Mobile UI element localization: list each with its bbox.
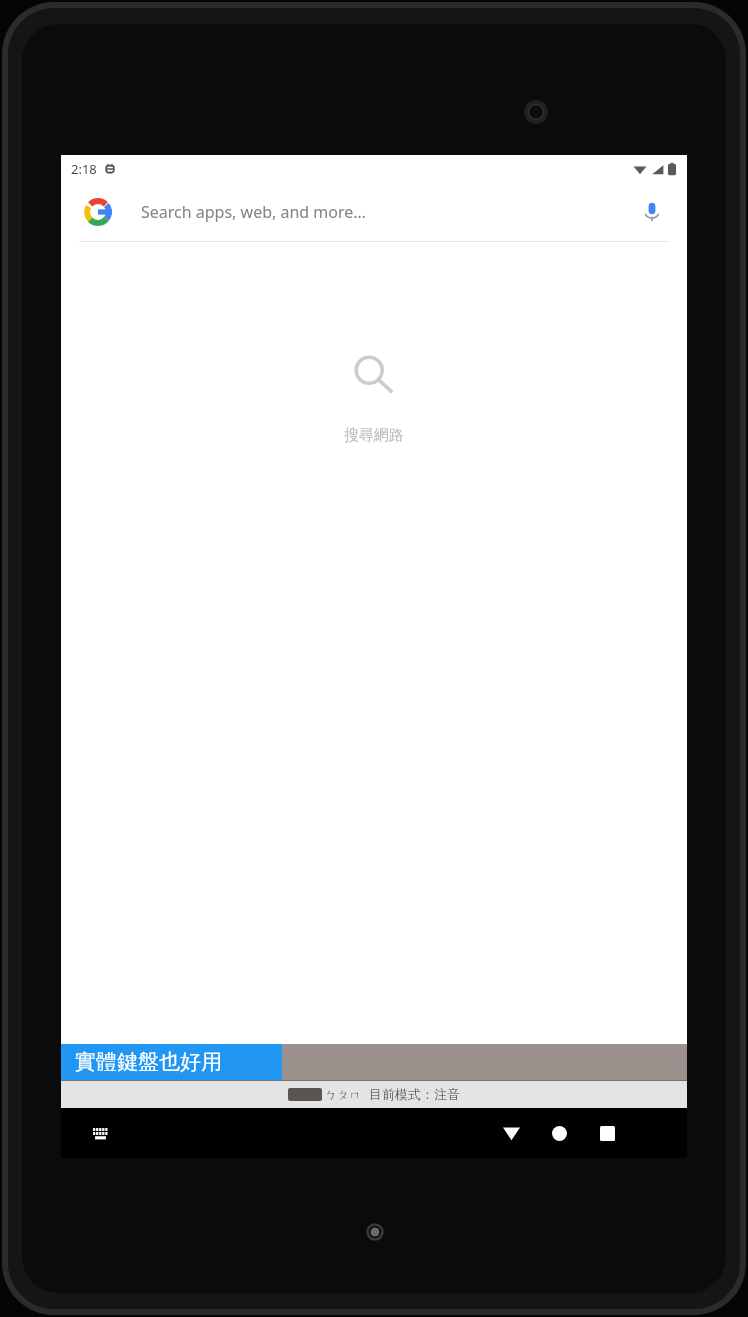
staticText: 目前模式：注音 bbox=[369, 1086, 460, 1102]
button[interactable]: Home bbox=[537, 1111, 581, 1155]
button[interactable]: Recent apps bbox=[585, 1111, 629, 1155]
staticText: 2:18 bbox=[71, 160, 97, 178]
button[interactable]: Hide keyboard bbox=[489, 1111, 533, 1155]
button[interactable]: Switch input mode bbox=[288, 1088, 322, 1101]
staticText: 實體鍵盤也好用 bbox=[75, 1049, 222, 1075]
staticText: ㄅㄆㄇ bbox=[325, 1087, 362, 1102]
button[interactable]: Search apps, web, and more… bbox=[61, 183, 687, 241]
button[interactable]: Keyboard bbox=[83, 1115, 119, 1151]
staticText: 搜尋網路 bbox=[344, 426, 404, 445]
staticText: Search apps, web, and more… bbox=[141, 201, 631, 223]
button[interactable]: Voice search bbox=[631, 191, 673, 233]
button[interactable]: 實體鍵盤也好用 bbox=[61, 1044, 282, 1080]
